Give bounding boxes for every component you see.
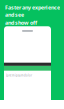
staticText: Faster any experience and see: [5, 4, 60, 18]
staticText: Lorem ipsum dolor: [6, 74, 32, 77]
staticText: and show off: [5, 19, 37, 26]
